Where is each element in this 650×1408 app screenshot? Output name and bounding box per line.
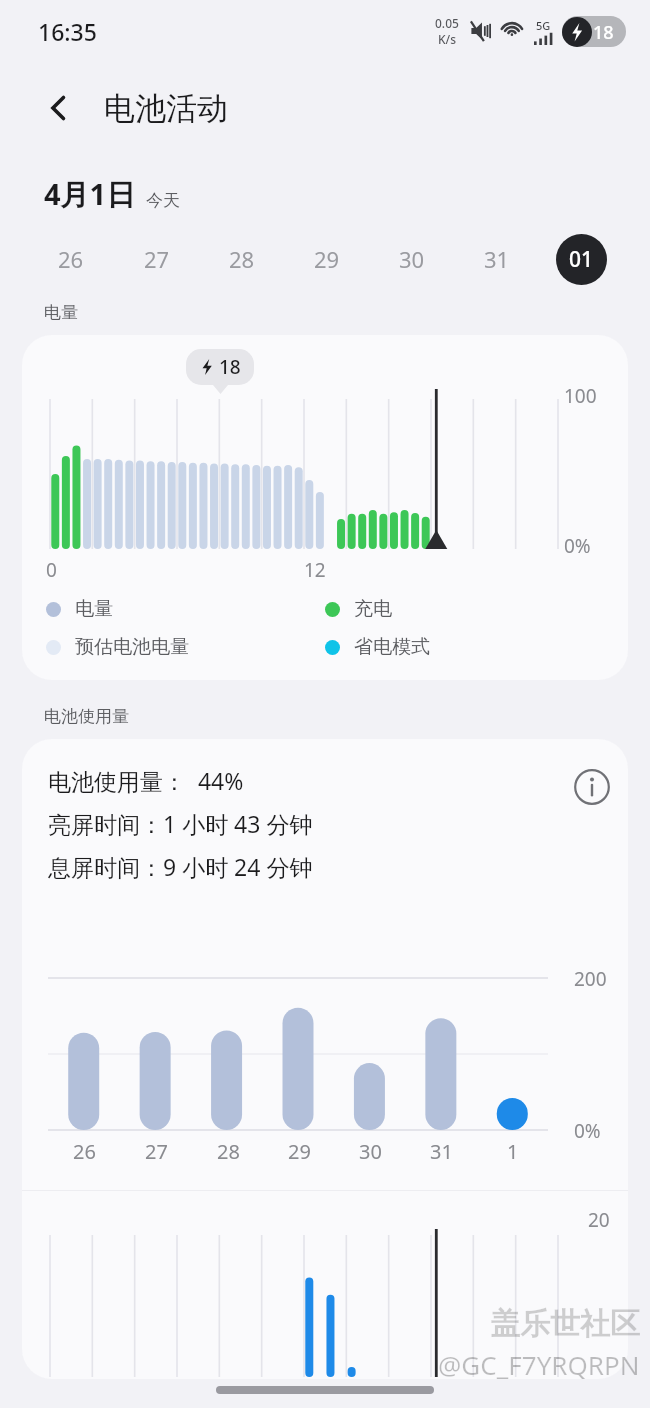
staticText: 200 (574, 966, 607, 992)
staticText: 31 (484, 244, 510, 274)
staticText: 30 (359, 1138, 382, 1165)
staticText: 26 (58, 244, 84, 274)
staticText: 18 (219, 354, 241, 380)
staticText: 1 (507, 1138, 519, 1165)
button[interactable]: 26 (28, 232, 114, 286)
staticText: 27 (144, 244, 170, 274)
staticText: 20 (588, 1207, 610, 1233)
staticText: 息屏时间：9 小时 24 分钟 (48, 851, 313, 882)
staticText: 16:35 (38, 16, 97, 47)
staticText: 0.05 (435, 15, 459, 31)
staticText: 27 (145, 1138, 168, 1165)
staticText: 28 (217, 1138, 240, 1165)
staticText: 12 (304, 557, 326, 583)
staticText: 29 (288, 1138, 311, 1165)
staticText: 省电模式 (354, 635, 430, 659)
button[interactable]: 29 (284, 232, 369, 286)
staticText: 今天 (146, 190, 180, 211)
staticText: 100 (564, 383, 597, 409)
button[interactable]: 27 (114, 232, 199, 286)
staticText: 电池使用量： 44% (48, 765, 244, 796)
staticText: 盖乐世社区 (490, 1305, 640, 1343)
staticText: 0% (564, 533, 591, 559)
button[interactable]: 18 (22, 335, 628, 680)
staticText: 亮屏时间：1 小时 43 分钟 (48, 808, 313, 839)
staticText: 29 (314, 244, 340, 274)
staticText: 30 (399, 244, 425, 274)
staticText: 电池活动 (104, 89, 228, 128)
staticText: 电量 (44, 302, 78, 323)
staticText: 电量 (75, 597, 113, 621)
button[interactable]: 30 (369, 232, 454, 286)
staticText: 28 (229, 244, 255, 274)
staticText: 31 (430, 1138, 453, 1165)
button[interactable]: 电池使用量： 44% (22, 739, 628, 882)
staticText: 26 (73, 1138, 96, 1165)
staticText: 18 (593, 20, 614, 45)
staticText: 电池使用量 (44, 706, 129, 727)
staticText: K/s (438, 31, 457, 47)
button[interactable]: Info (570, 765, 614, 809)
staticText: @GC_F7YRQRPN (438, 1347, 640, 1382)
staticText: 01 (569, 245, 594, 274)
staticText: 0% (574, 1118, 601, 1144)
button[interactable]: 31 (454, 232, 539, 286)
button[interactable]: 28 (199, 232, 284, 286)
staticText: 5G (536, 18, 551, 33)
staticText: 4月1日 (44, 174, 136, 214)
staticText: 预估电池电量 (75, 635, 189, 659)
staticText: 充电 (354, 597, 392, 621)
staticText: 0 (46, 557, 57, 583)
button[interactable]: 01 (539, 232, 624, 286)
button[interactable]: Back (34, 83, 84, 133)
